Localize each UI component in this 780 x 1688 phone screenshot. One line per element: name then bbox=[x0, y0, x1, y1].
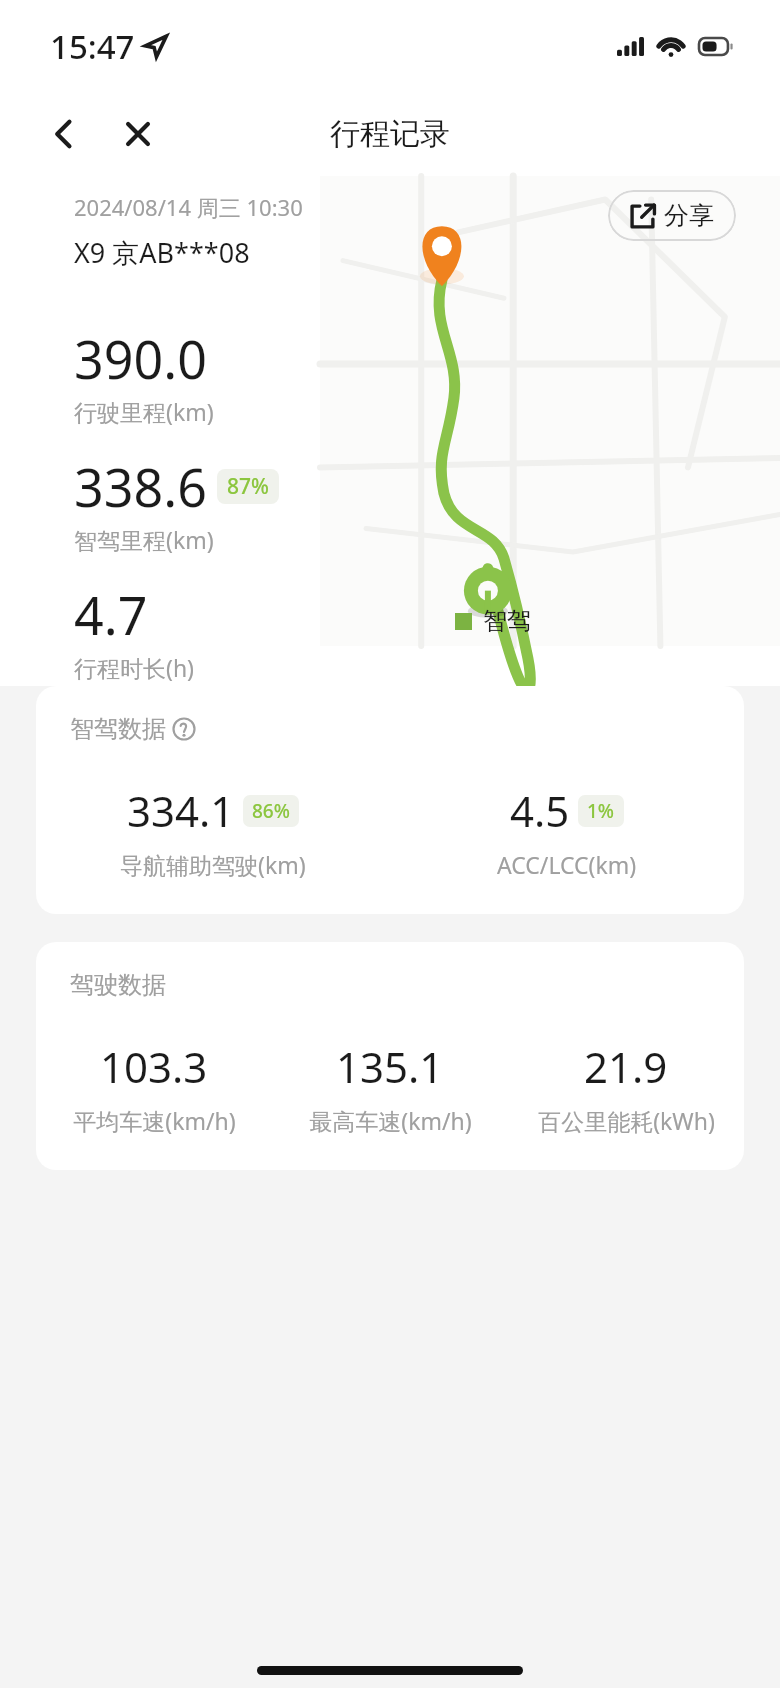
staticText: 2024/08/14 周三 10:30 bbox=[74, 192, 303, 222]
staticText: 行程时长(h) bbox=[74, 652, 195, 683]
button[interactable]: Close bbox=[110, 106, 166, 162]
button[interactable]: Back bbox=[36, 106, 92, 162]
staticText: 103.3 bbox=[100, 1038, 208, 1095]
staticText: 智驾里程(km) bbox=[74, 524, 214, 555]
staticText: 百公里能耗(kWh) bbox=[538, 1105, 715, 1136]
button[interactable]: 分享 bbox=[608, 190, 736, 241]
staticText: 导航辅助驾驶(km) bbox=[120, 849, 306, 880]
button[interactable]: 驾驶数据 bbox=[36, 942, 744, 1170]
staticText: 87% bbox=[227, 472, 269, 501]
staticText: 行程记录 bbox=[330, 115, 450, 153]
staticText: 390.0 bbox=[74, 323, 207, 394]
staticText: 最高车速(km/h) bbox=[309, 1105, 472, 1136]
staticText: 4.5 bbox=[510, 782, 570, 839]
staticText: 135.1 bbox=[336, 1038, 444, 1095]
staticText: 338.6 bbox=[74, 451, 207, 522]
staticText: 1% bbox=[587, 798, 615, 824]
staticText: 334.1 bbox=[127, 782, 235, 839]
button[interactable]: 智驾数据 bbox=[36, 686, 744, 914]
staticText: 平均车速(km/h) bbox=[73, 1105, 236, 1136]
staticText: 21.9 bbox=[584, 1038, 668, 1095]
staticText: 86% bbox=[252, 798, 290, 824]
staticText: 驾驶数据 bbox=[70, 970, 166, 1000]
staticText: 4.7 bbox=[74, 579, 148, 650]
staticText: 智驾数据 bbox=[70, 714, 166, 744]
staticText: 行驶里程(km) bbox=[74, 396, 214, 427]
staticText: ACC/LCC(km) bbox=[497, 849, 637, 880]
staticText: X9 京AB***08 bbox=[74, 234, 250, 271]
staticText: 分享 bbox=[664, 200, 714, 231]
staticText: 智驾 bbox=[483, 606, 531, 636]
staticText: 15:47 bbox=[50, 24, 135, 69]
